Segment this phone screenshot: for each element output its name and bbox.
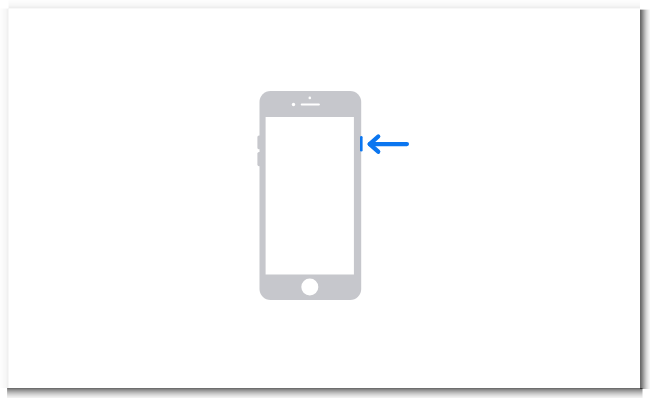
button[interactable]: Home button	[300, 277, 320, 297]
button[interactable]: Side button	[358, 132, 412, 158]
button[interactable]: Phone illustration	[255, 88, 365, 303]
